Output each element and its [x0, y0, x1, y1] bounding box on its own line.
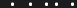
- button[interactable]: [26, 0, 35, 8]
- button[interactable]: [8, 0, 17, 8]
- button[interactable]: [52, 0, 61, 8]
- button[interactable]: [68, 0, 77, 8]
- button[interactable]: [42, 0, 51, 8]
